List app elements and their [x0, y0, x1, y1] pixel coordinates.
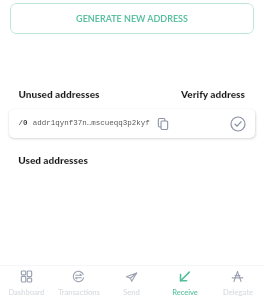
button[interactable]: Copy address — [155, 116, 171, 132]
staticText: Delegate — [223, 287, 253, 296]
staticText: Verify address — [181, 88, 245, 100]
staticText: Receive — [172, 287, 198, 296]
button[interactable]: Dashboard — [0, 265, 52, 300]
button[interactable]: Receive — [158, 265, 211, 300]
button[interactable]: Transactions — [52, 265, 105, 300]
staticText: Dashboard — [8, 287, 45, 296]
button[interactable]: Verify address — [229, 115, 247, 133]
staticText: addr1qynf37n…mscueqq3p2kyf — [28, 119, 150, 127]
staticText: Send — [123, 287, 140, 296]
button[interactable]: /0 — [9, 109, 255, 138]
staticText: GENERATE NEW ADDRESS — [76, 13, 188, 24]
staticText: Unused addresses — [18, 88, 100, 100]
button[interactable]: Send — [105, 265, 158, 300]
staticText: Transactions — [58, 287, 100, 296]
staticText: Used addresses — [18, 154, 88, 166]
staticText: /0 — [18, 119, 28, 127]
button[interactable]: Delegate — [211, 265, 264, 300]
button[interactable]: GENERATE NEW ADDRESS — [10, 3, 254, 34]
